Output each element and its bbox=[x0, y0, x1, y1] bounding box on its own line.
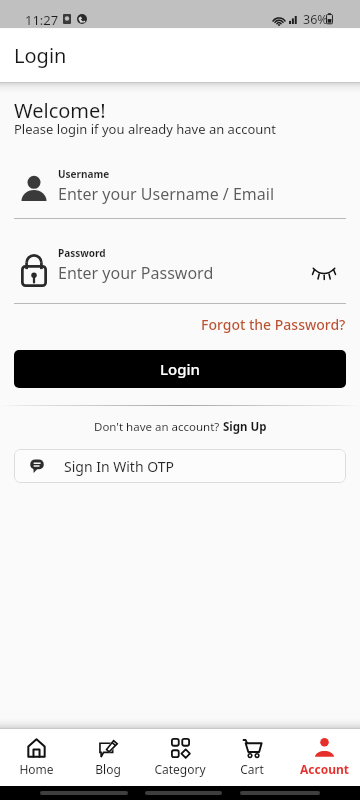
button[interactable]: Forgot the Password? bbox=[201, 315, 360, 334]
button[interactable]: Cart bbox=[216, 729, 288, 777]
button[interactable]: Category bbox=[144, 729, 216, 777]
button[interactable]: Sign In With OTP bbox=[14, 449, 346, 483]
staticText: Please login if you already have an acco… bbox=[14, 120, 277, 138]
staticText: 36% bbox=[303, 11, 328, 28]
staticText: Account bbox=[300, 761, 349, 777]
staticText: Blog bbox=[95, 761, 121, 777]
button[interactable]: Show password bbox=[304, 257, 344, 289]
staticText: Sign In With OTP bbox=[64, 457, 174, 476]
staticText: Don't have an account? bbox=[94, 419, 223, 435]
staticText: Cart bbox=[240, 761, 264, 777]
staticText: Home bbox=[19, 761, 54, 777]
button[interactable]: Login bbox=[14, 350, 346, 388]
staticText: Category bbox=[154, 761, 206, 777]
button[interactable]: Sign Up bbox=[223, 419, 267, 435]
staticText: 11:27 bbox=[25, 11, 59, 29]
staticText: Enter your Username / Email bbox=[58, 183, 275, 205]
staticText: Username bbox=[58, 167, 110, 181]
staticText: Password bbox=[58, 246, 106, 260]
staticText: Login bbox=[14, 42, 67, 69]
button[interactable]: Home bbox=[0, 729, 72, 777]
button[interactable]: Account bbox=[288, 729, 360, 777]
staticText: Welcome! bbox=[14, 97, 106, 124]
staticText: Login bbox=[160, 359, 200, 379]
button[interactable]: Blog bbox=[72, 729, 144, 777]
staticText: Enter your Password bbox=[58, 262, 214, 284]
